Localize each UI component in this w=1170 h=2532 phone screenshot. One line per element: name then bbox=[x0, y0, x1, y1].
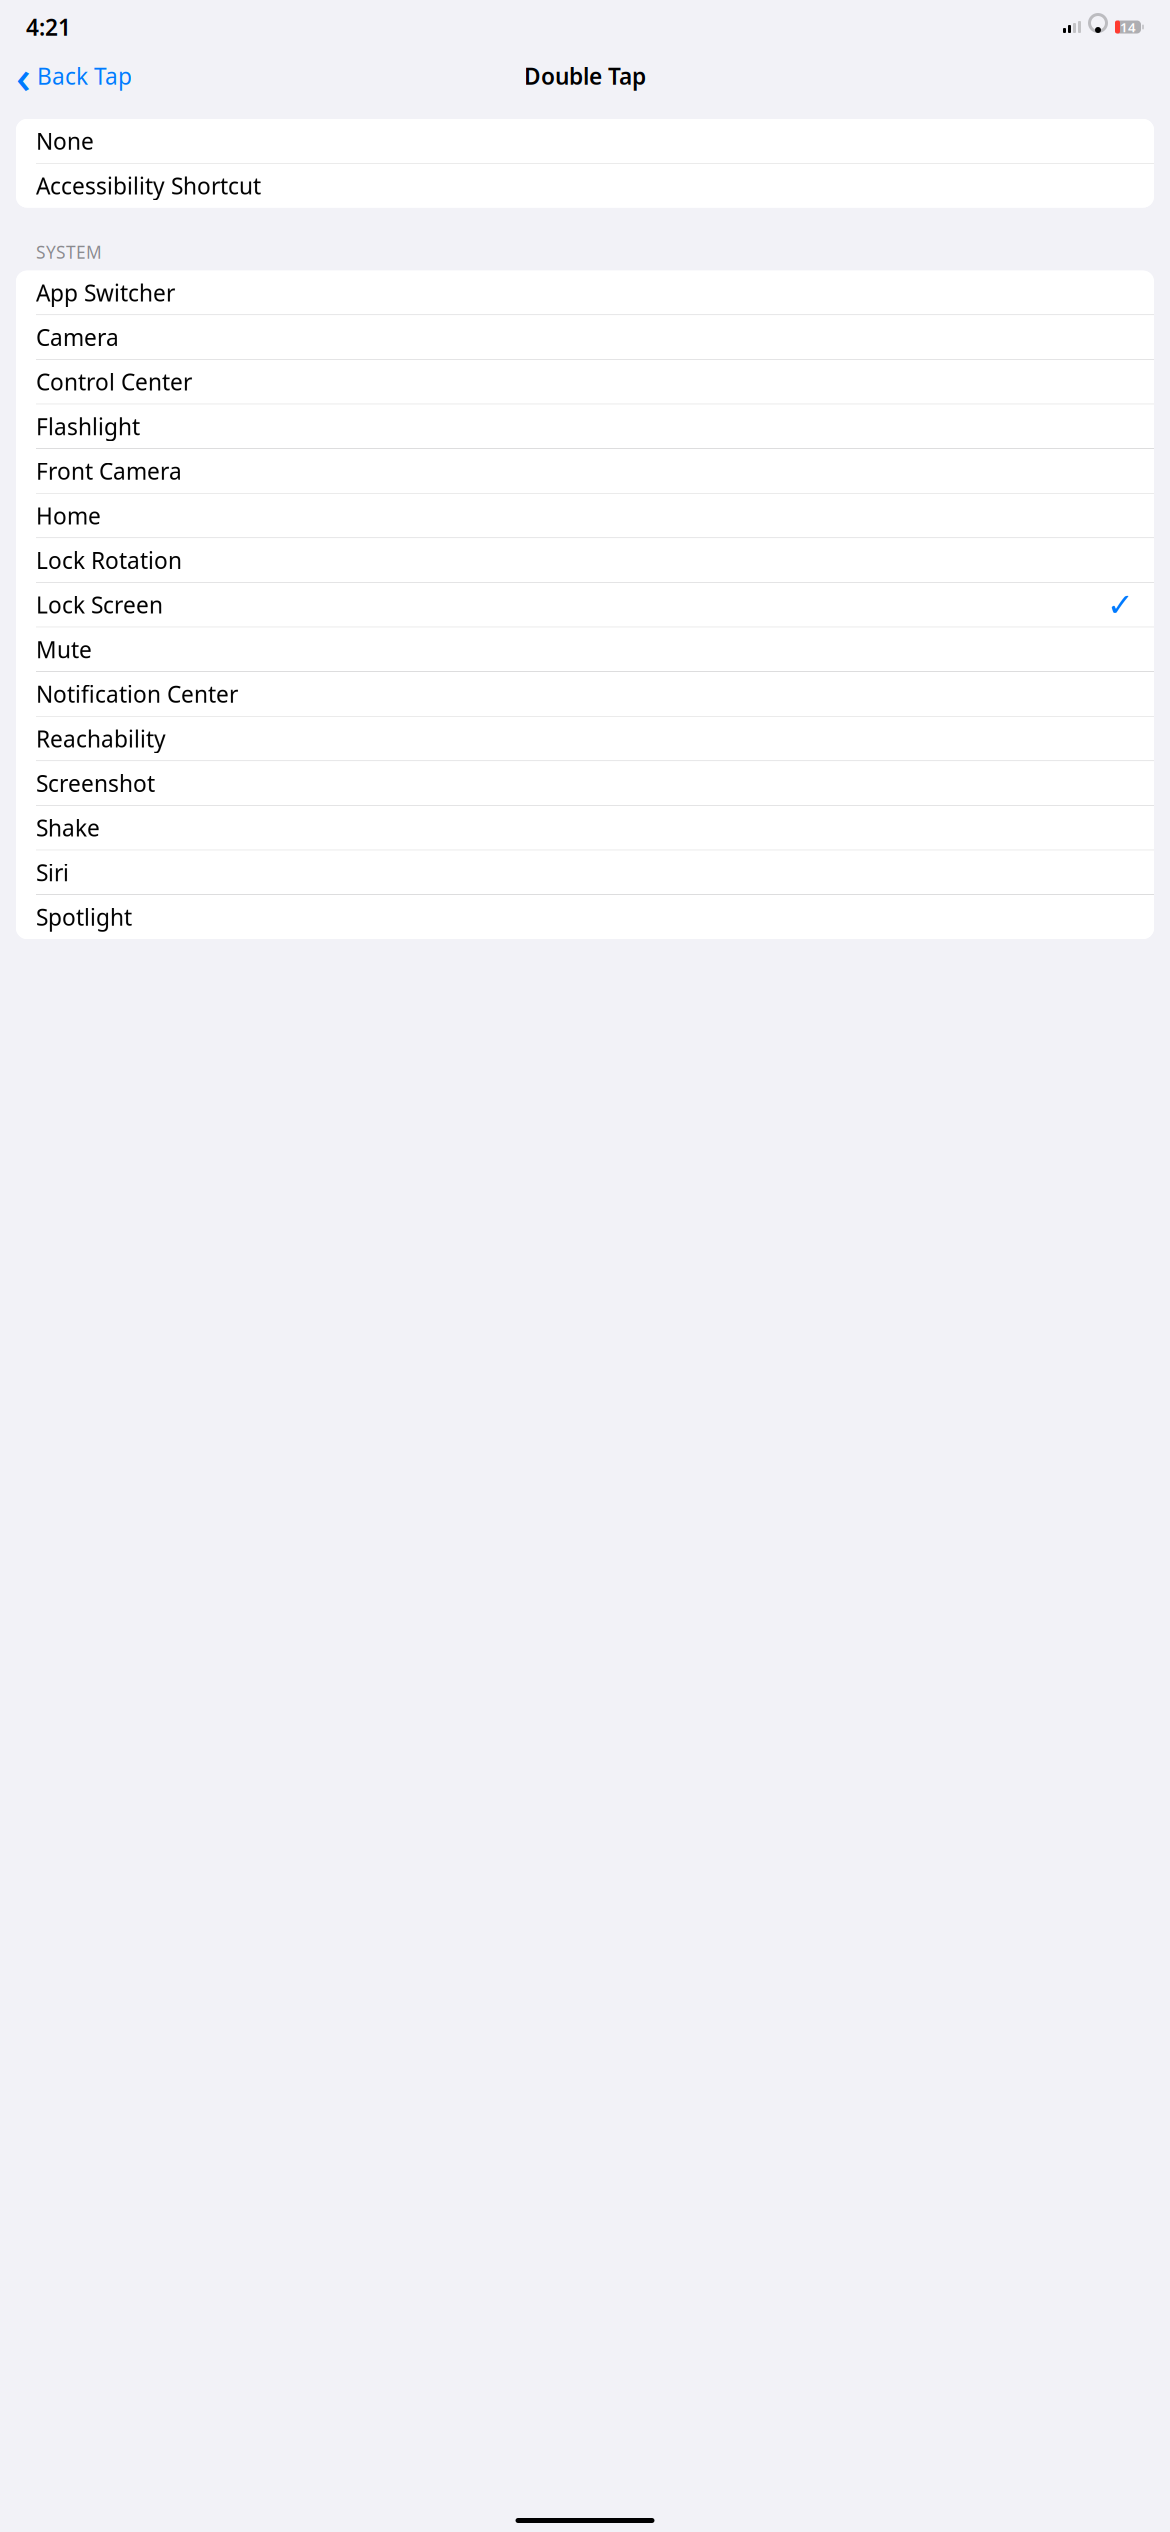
staticText: SYSTEM bbox=[36, 241, 102, 264]
button[interactable]: Accessibility Shortcut bbox=[16, 164, 1154, 208]
button[interactable]: Siri bbox=[16, 850, 1154, 894]
staticText: 4:21 bbox=[26, 12, 71, 42]
staticText: Siri bbox=[36, 857, 69, 887]
staticText: Spotlight bbox=[36, 902, 132, 932]
staticText: Home bbox=[36, 501, 101, 531]
staticText: Lock Screen bbox=[36, 590, 163, 620]
button[interactable]: Lock Rotation bbox=[16, 538, 1154, 582]
button[interactable]: Notification Center bbox=[16, 672, 1154, 716]
button[interactable]: Front Camera bbox=[16, 449, 1154, 493]
staticText: Reachability bbox=[36, 724, 166, 754]
button[interactable]: Control Center bbox=[16, 360, 1154, 404]
staticText: Camera bbox=[36, 322, 119, 352]
staticText: Accessibility Shortcut bbox=[36, 170, 261, 201]
button[interactable]: ‹ bbox=[8, 54, 140, 98]
button[interactable]: Screenshot bbox=[16, 761, 1154, 805]
staticText: Control Center bbox=[36, 367, 192, 397]
staticText: ‹ bbox=[16, 46, 31, 106]
button[interactable]: Home bbox=[16, 494, 1154, 538]
staticText: Notification Center bbox=[36, 679, 238, 709]
button[interactable]: Camera bbox=[16, 315, 1154, 359]
button[interactable]: Shake bbox=[16, 806, 1154, 850]
staticText: Shake bbox=[36, 813, 100, 843]
staticText: Mute bbox=[36, 634, 92, 664]
staticText: 14 bbox=[1120, 18, 1136, 36]
button[interactable]: Lock Screen bbox=[16, 583, 1154, 627]
button[interactable]: App Switcher bbox=[16, 271, 1154, 315]
button[interactable]: Mute bbox=[16, 627, 1154, 671]
button[interactable]: Flashlight bbox=[16, 404, 1154, 448]
button[interactable]: Spotlight bbox=[16, 895, 1154, 939]
staticText: Back Tap bbox=[37, 61, 132, 91]
staticText: Screenshot bbox=[36, 768, 155, 798]
staticText: Flashlight bbox=[36, 411, 140, 441]
staticText: Double Tap bbox=[524, 61, 646, 91]
staticText: ✓ bbox=[1107, 587, 1134, 623]
staticText: Front Camera bbox=[36, 456, 182, 486]
staticText: Lock Rotation bbox=[36, 545, 182, 575]
staticText: App Switcher bbox=[36, 278, 175, 308]
button[interactable]: None bbox=[16, 119, 1154, 163]
button[interactable]: Reachability bbox=[16, 717, 1154, 761]
staticText: None bbox=[36, 126, 94, 156]
